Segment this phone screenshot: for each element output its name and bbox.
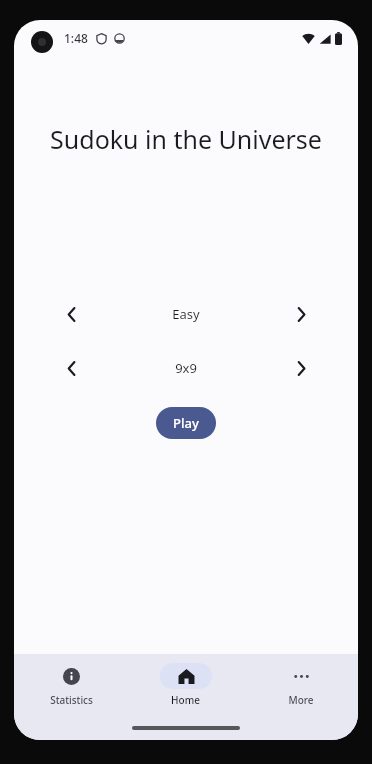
button[interactable]: Next board size <box>285 352 317 384</box>
staticText: Play <box>173 414 199 432</box>
staticText: Sudoku in the Universe <box>50 122 322 156</box>
button[interactable]: Previous board size <box>55 352 87 384</box>
staticText: 1:48 <box>64 30 88 46</box>
button[interactable]: More <box>243 663 358 707</box>
staticText: Statistics <box>50 693 93 707</box>
staticText: 9x9 <box>175 359 197 377</box>
button[interactable]: Statistics <box>14 663 128 707</box>
button[interactable]: Next difficulty <box>285 298 317 330</box>
button[interactable]: Previous difficulty <box>55 298 87 330</box>
button[interactable]: Play <box>156 407 216 439</box>
staticText: Easy <box>172 305 200 323</box>
staticText: More <box>288 693 314 707</box>
staticText: Home <box>171 693 200 707</box>
button[interactable]: Home <box>128 663 243 707</box>
